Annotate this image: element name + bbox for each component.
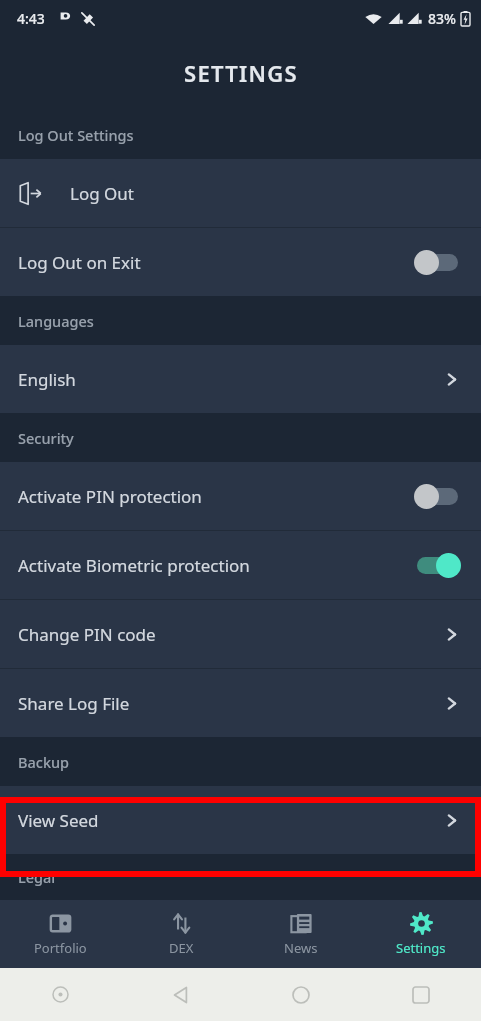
staticText: Activate Biometric protection bbox=[18, 554, 414, 577]
button[interactable]: Portfolio bbox=[0, 900, 121, 968]
staticText: Legal bbox=[18, 867, 56, 887]
button[interactable]: Log Out bbox=[0, 159, 481, 227]
button[interactable]: Activate Biometric protection bbox=[0, 531, 481, 599]
button[interactable]: View Seed bbox=[0, 786, 481, 854]
button[interactable]: Share Log File bbox=[0, 669, 481, 737]
staticText: DEX bbox=[169, 939, 194, 957]
staticText: Settings bbox=[396, 939, 446, 957]
button[interactable]: English bbox=[0, 345, 481, 413]
staticText: Security bbox=[18, 428, 74, 448]
button[interactable]: Back bbox=[121, 968, 241, 1021]
staticText: SETTINGS bbox=[184, 58, 298, 88]
staticText: Change PIN code bbox=[18, 623, 444, 646]
button[interactable]: Recents bbox=[361, 968, 481, 1021]
button[interactable]: Change PIN code bbox=[0, 600, 481, 668]
staticText: Languages bbox=[18, 311, 94, 331]
staticText: View Seed bbox=[18, 809, 444, 832]
staticText: 83% bbox=[428, 9, 456, 28]
staticText: Portfolio bbox=[34, 939, 87, 957]
staticText: Activate PIN protection bbox=[18, 485, 414, 508]
staticText: Backup bbox=[18, 752, 70, 772]
button[interactable]: DEX bbox=[121, 900, 241, 968]
other: Log Out bbox=[18, 182, 41, 205]
staticText: News bbox=[284, 939, 318, 957]
staticText: Log Out bbox=[70, 182, 134, 205]
staticText: English bbox=[18, 368, 444, 391]
button[interactable]: Activate PIN protection bbox=[0, 462, 481, 530]
staticText: Share Log File bbox=[18, 692, 444, 715]
button[interactable]: Home bbox=[241, 968, 361, 1021]
button[interactable]: Log Out on Exit bbox=[0, 228, 481, 296]
button[interactable]: News bbox=[241, 900, 361, 968]
button[interactable]: Settings bbox=[361, 900, 481, 968]
button[interactable]: Assistant bbox=[0, 968, 121, 1021]
staticText: 4:43 bbox=[17, 9, 45, 28]
staticText: Log Out Settings bbox=[18, 125, 134, 145]
staticText: Log Out on Exit bbox=[18, 251, 414, 274]
